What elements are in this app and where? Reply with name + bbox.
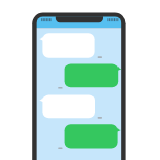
- button[interactable]: Chat conversation illustration: [0, 0, 160, 160]
